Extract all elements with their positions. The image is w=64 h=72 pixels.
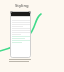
staticText: Styling — [15, 3, 29, 9]
